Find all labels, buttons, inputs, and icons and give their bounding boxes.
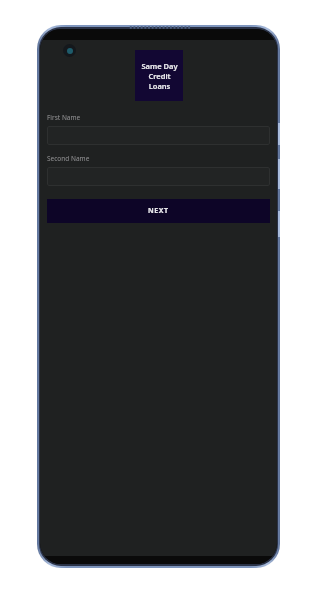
staticText: Same Day Credit Loans — [141, 61, 178, 91]
staticText: First Name — [47, 113, 81, 122]
button[interactable]: Text input field — [47, 126, 270, 145]
staticText: NEXT — [148, 206, 169, 216]
button[interactable]: NEXT — [47, 199, 270, 223]
staticText: Second Name — [47, 154, 90, 163]
button[interactable]: Same Day Credit Loans — [135, 50, 183, 101]
button[interactable]: Text input field — [47, 167, 270, 186]
